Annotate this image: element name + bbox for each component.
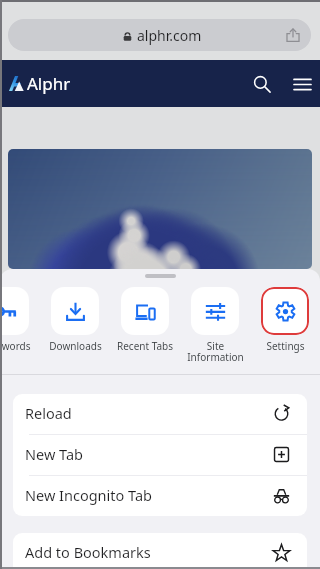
button[interactable]: New Incognito Tab	[13, 476, 307, 516]
staticText: Site Information	[187, 339, 244, 364]
staticText: Passwords	[0, 339, 31, 353]
button[interactable]: New Tab	[13, 435, 307, 475]
button[interactable]: alphr.com	[8, 19, 311, 51]
button[interactable]: Share	[282, 24, 304, 46]
button[interactable]: Reload	[13, 394, 307, 434]
staticText: Alphr	[27, 72, 71, 95]
staticText: Add to Bookmarks	[25, 542, 151, 562]
button[interactable]: Downloads	[40, 287, 110, 353]
button[interactable]: Settings	[250, 287, 320, 353]
button[interactable]: Add to Bookmarks	[13, 533, 307, 569]
staticText: Settings	[266, 339, 305, 353]
staticText: New Tab	[25, 444, 84, 464]
staticText: alphr.com	[137, 26, 202, 45]
staticText: Downloads	[49, 339, 102, 353]
button[interactable]: Site Information	[180, 287, 250, 364]
staticText: Recent Tabs	[117, 339, 173, 353]
button[interactable]: Search	[246, 68, 278, 100]
staticText: New Incognito Tab	[25, 485, 153, 505]
button[interactable]: Passwords	[0, 287, 40, 353]
staticText: Reload	[25, 403, 72, 423]
button[interactable]: Menu	[286, 68, 318, 100]
button[interactable]: Recent Tabs	[110, 287, 180, 353]
